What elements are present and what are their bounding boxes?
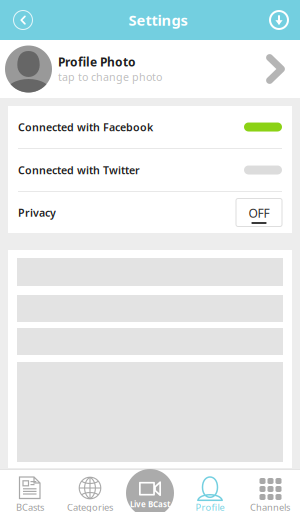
staticText: Profile Photo: [58, 54, 136, 70]
button[interactable]: Categories: [60, 470, 120, 512]
staticText: Channels: [250, 501, 290, 512]
staticText: Connected with Twitter: [18, 163, 140, 177]
button[interactable]: Back: [4, 0, 42, 40]
staticText: tap to change photo: [58, 70, 162, 84]
staticText: Settings: [128, 10, 187, 30]
button[interactable]: Profile: [180, 470, 240, 512]
staticText: Live BCast: [130, 499, 170, 509]
staticText: BCasts: [16, 501, 44, 512]
staticText: Categories: [67, 501, 113, 512]
button[interactable]: BCasts: [0, 470, 60, 512]
button[interactable]: Download: [262, 0, 296, 40]
staticText: OFF: [248, 205, 269, 221]
button[interactable]: Profile Photo: [0, 40, 300, 98]
staticText: Privacy: [18, 205, 56, 220]
staticText: Profile: [195, 501, 224, 512]
staticText: Connected with Facebook: [18, 120, 153, 134]
button[interactable]: Live BCast: [126, 469, 174, 512]
button[interactable]: Channels: [240, 470, 300, 512]
